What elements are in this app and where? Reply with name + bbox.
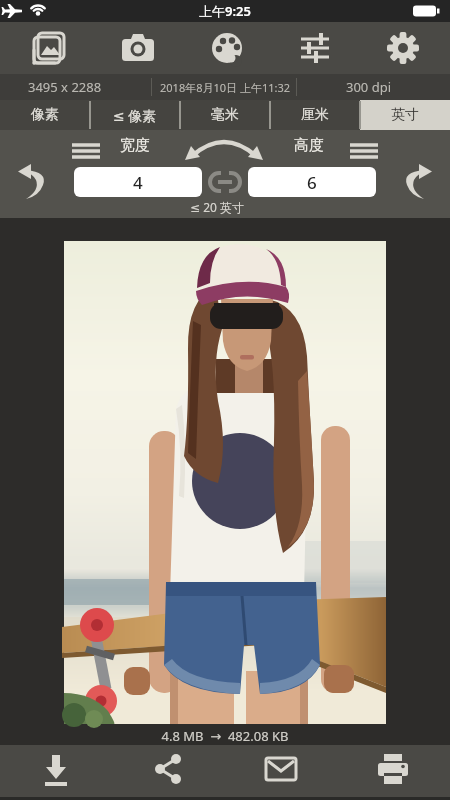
- staticText: 宽度: [120, 136, 150, 155]
- button[interactable]: [368, 22, 438, 74]
- button[interactable]: 厘米: [270, 100, 360, 130]
- staticText: 2018年8月10日 上午11:32: [160, 80, 291, 95]
- staticText: ≤ 像素: [113, 106, 157, 125]
- staticText: 像素: [31, 106, 59, 124]
- button[interactable]: 毫米: [180, 100, 270, 130]
- button[interactable]: [342, 137, 386, 165]
- button[interactable]: [192, 22, 262, 74]
- staticText: 300 dpi: [346, 78, 392, 96]
- button[interactable]: [64, 137, 108, 165]
- staticText: 英寸: [391, 106, 419, 124]
- button[interactable]: [12, 160, 58, 202]
- staticText: 厘米: [301, 106, 329, 124]
- button[interactable]: [208, 170, 242, 194]
- button[interactable]: [392, 160, 438, 202]
- staticText: 6: [307, 171, 317, 194]
- button[interactable]: [280, 22, 350, 74]
- button[interactable]: [353, 745, 433, 800]
- staticText: 高度: [294, 136, 324, 155]
- button[interactable]: 4: [74, 167, 202, 197]
- button[interactable]: [103, 22, 173, 74]
- button[interactable]: 像素: [0, 100, 90, 130]
- staticText: 上午9:25: [199, 2, 251, 20]
- button[interactable]: [16, 745, 96, 800]
- staticText: 3495 x 2288: [28, 78, 102, 96]
- staticText: ≤ 20 英寸: [190, 199, 245, 215]
- staticText: 4: [133, 171, 143, 194]
- button[interactable]: 6: [248, 167, 376, 197]
- staticText: 毫米: [211, 106, 239, 124]
- button[interactable]: [241, 745, 321, 800]
- button[interactable]: 英寸: [360, 100, 450, 130]
- button[interactable]: [128, 745, 208, 800]
- button[interactable]: ≤ 像素: [90, 100, 180, 130]
- staticText: 4.8 MB → 482.08 KB: [0, 727, 450, 745]
- button[interactable]: [14, 22, 84, 74]
